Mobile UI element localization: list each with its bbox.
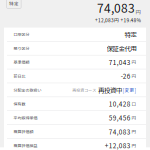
staticText: 保有数 (13, 101, 25, 107)
staticText: 分配金の取扱い (13, 87, 41, 93)
staticText: 特定 (124, 30, 136, 39)
staticText: 10,428 (109, 99, 131, 108)
staticText: 円 (131, 128, 136, 135)
staticText: 59,456 (109, 113, 131, 122)
staticText: 再投資コース (72, 87, 96, 93)
staticText: +19.48% (120, 17, 140, 24)
staticText: [変更] (122, 87, 136, 93)
staticText: 円 (131, 73, 136, 79)
staticText: 再投資中 (98, 85, 122, 95)
staticText: 円 (135, 8, 140, 16)
staticText: 前日比 (13, 73, 25, 79)
staticText: 74,083 (97, 0, 135, 16)
staticText: 円 (131, 114, 136, 121)
staticText: 保証金代用 (106, 44, 136, 53)
staticText: 概算評価損益 (13, 143, 37, 148)
staticText: 円 (131, 142, 136, 149)
staticText: +12,083 (105, 141, 131, 150)
staticText: 平均取得単価 (13, 115, 37, 121)
staticText: 預り区分 (13, 45, 29, 51)
staticText: 特定 (9, 0, 19, 7)
staticText: -26 (121, 71, 131, 81)
staticText: 71,043 (109, 57, 131, 67)
staticText: +12,083円 (95, 17, 119, 24)
staticText: 概算評価額 (13, 129, 33, 134)
staticText: 円 (131, 59, 136, 65)
staticText: 口 (131, 100, 136, 107)
staticText: 74,083 (109, 127, 131, 136)
staticText: 基準価額 (13, 59, 29, 65)
staticText: 口座区分 (13, 31, 29, 37)
